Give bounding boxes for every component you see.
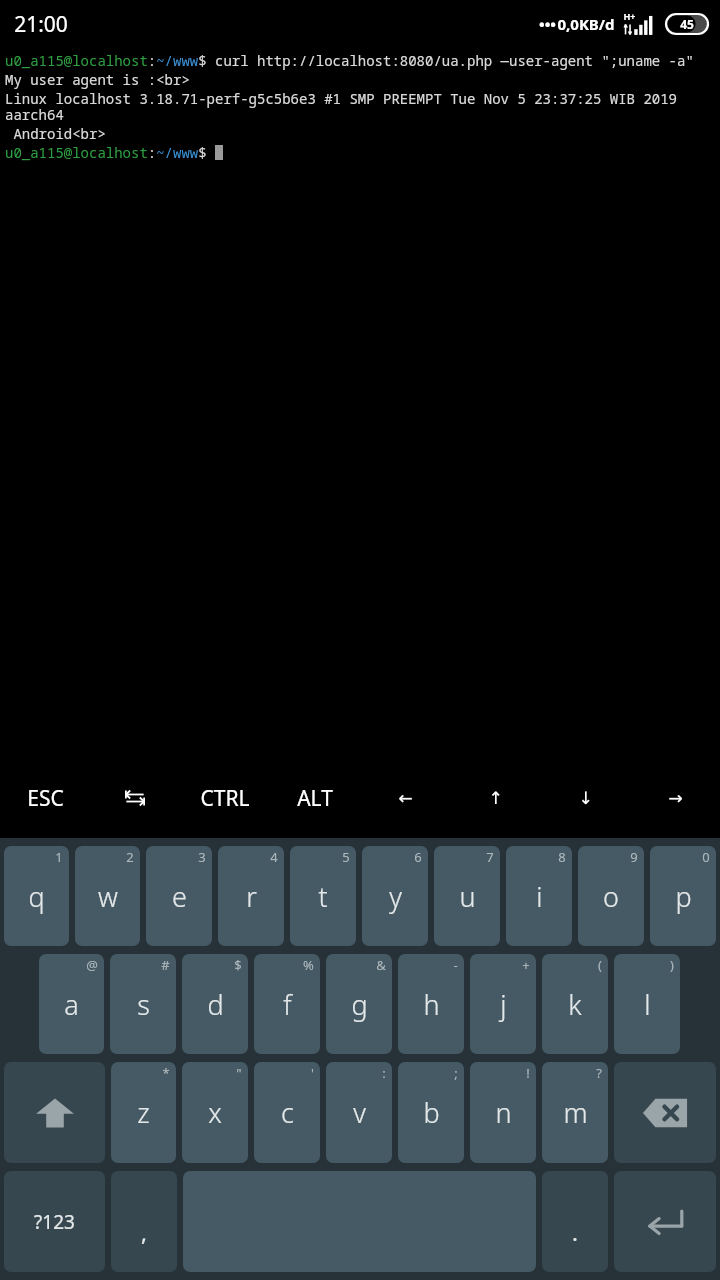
staticText: ↑ (488, 788, 503, 808)
staticText: ) (670, 956, 674, 974)
staticText: , (141, 1217, 147, 1247)
button[interactable]: ESC (0, 758, 90, 838)
button[interactable]: Backspace (614, 1062, 716, 1163)
button[interactable]: , (111, 1171, 177, 1272)
button[interactable]: h (398, 954, 464, 1054)
button[interactable]: → (630, 758, 720, 838)
button[interactable]: d (182, 954, 248, 1054)
button[interactable]: p (650, 846, 716, 946)
button[interactable]: Enter (614, 1171, 716, 1272)
button[interactable]: n (470, 1062, 536, 1163)
staticText: . (572, 1217, 578, 1247)
button[interactable]: w (75, 846, 140, 946)
staticText: q (28, 878, 45, 915)
staticText: 0 (702, 848, 710, 866)
button[interactable]: z (111, 1062, 176, 1163)
button[interactable]: u (434, 846, 500, 946)
staticText: 5 (342, 848, 350, 866)
staticText: ↓ (578, 788, 593, 808)
staticText: ! (526, 1064, 530, 1082)
staticText: x (208, 1094, 222, 1131)
button[interactable]: b (398, 1062, 464, 1163)
button[interactable]: ← (360, 758, 450, 838)
button[interactable]: m (542, 1062, 608, 1163)
staticText: 4 (270, 848, 278, 866)
staticText: Linux localhost 3.18.71-perf-g5c5b6e3 #1… (5, 89, 718, 124)
button[interactable]: . (542, 1171, 608, 1272)
staticText: u0_a115@localhost:~/www$ (5, 143, 215, 162)
button[interactable]: i (506, 846, 572, 946)
staticText: v (353, 1094, 366, 1131)
button[interactable]: ↓ (540, 758, 630, 838)
button[interactable]: e (146, 846, 212, 946)
staticText: k (568, 986, 582, 1023)
button[interactable]: a (39, 954, 104, 1054)
staticText: ••• (539, 14, 556, 34)
staticText: ( (598, 956, 602, 974)
staticText: ? (596, 1064, 602, 1082)
staticText: 45 (680, 16, 694, 32)
staticText: ; (454, 1064, 458, 1082)
button[interactable]: l (614, 954, 680, 1054)
button[interactable]: f (254, 954, 320, 1054)
staticText: Android<br> (5, 124, 106, 143)
staticText: @ (86, 956, 98, 974)
staticText: o (603, 878, 619, 915)
button[interactable]: c (254, 1062, 320, 1163)
staticText: → (668, 788, 683, 808)
staticText: i (536, 878, 543, 915)
staticText: ← (398, 788, 413, 808)
staticText: r (246, 878, 257, 915)
staticText: 8 (558, 848, 566, 866)
button[interactable]: v (326, 1062, 392, 1163)
staticText: t (318, 878, 328, 915)
button[interactable]: x (182, 1062, 248, 1163)
staticText: 3 (198, 848, 206, 866)
staticText: & (376, 956, 386, 974)
staticText: H+ (623, 10, 636, 22)
staticText: u0_a115@localhost:~/www$ curl http://loc… (5, 51, 694, 70)
staticText: e (172, 878, 187, 915)
staticText: a (64, 986, 79, 1023)
staticText: p (675, 878, 692, 915)
button[interactable]: j (470, 954, 536, 1054)
staticText: ESC (27, 784, 64, 813)
button[interactable]: Shift (4, 1062, 105, 1163)
staticText: 21:00 (14, 10, 68, 39)
button[interactable]: g (326, 954, 392, 1054)
staticText: m (563, 1094, 588, 1131)
staticText: + (522, 956, 530, 974)
staticText: % (303, 956, 314, 974)
staticText: h (423, 986, 440, 1023)
button[interactable]: q (4, 846, 69, 946)
staticText: 9 (630, 848, 638, 866)
staticText: * (162, 1064, 170, 1082)
button[interactable]: t (290, 846, 356, 946)
staticText: l (644, 986, 651, 1023)
button[interactable]: ALT (270, 758, 360, 838)
staticText: " (236, 1064, 242, 1082)
button[interactable]: Tab (90, 758, 180, 838)
staticText: y (389, 878, 402, 915)
staticText: z (137, 1094, 150, 1131)
button[interactable]: k (542, 954, 608, 1054)
staticText: 2 (126, 848, 134, 866)
button[interactable]: CTRL (180, 758, 270, 838)
button[interactable]: ?123 (4, 1171, 105, 1272)
staticText: : (382, 1064, 386, 1082)
staticText: w (98, 878, 118, 915)
button[interactable]: o (578, 846, 644, 946)
button[interactable]: r (218, 846, 284, 946)
staticText: - (453, 956, 458, 974)
staticText: $ (234, 956, 242, 974)
button[interactable]: y (362, 846, 428, 946)
button[interactable]: s (110, 954, 176, 1054)
button[interactable]: ↑ (450, 758, 540, 838)
staticText: ?123 (34, 1209, 75, 1235)
staticText: 6 (414, 848, 422, 866)
staticText: b (423, 1094, 440, 1131)
staticText: # (161, 956, 170, 974)
staticText: CTRL (200, 784, 250, 813)
staticText: u (459, 878, 476, 915)
